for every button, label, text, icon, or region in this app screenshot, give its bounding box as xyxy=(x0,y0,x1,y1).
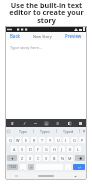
staticText: Y xyxy=(49,138,52,143)
button[interactable]: Q xyxy=(7,137,13,143)
staticText: A xyxy=(13,147,16,152)
staticText: S xyxy=(21,147,24,152)
button[interactable]: Hide keyboard xyxy=(5,172,28,180)
button[interactable]: Y xyxy=(47,137,53,143)
button[interactable]: Align xyxy=(65,119,73,127)
staticText: Types xyxy=(40,129,50,134)
button[interactable]: List xyxy=(53,119,61,127)
staticText: Type xyxy=(19,129,27,134)
button[interactable]: W xyxy=(15,137,21,143)
button[interactable]: R xyxy=(31,137,37,143)
button[interactable]: ?123 xyxy=(7,164,18,170)
staticText: T xyxy=(41,138,44,143)
button[interactable]: Typed xyxy=(57,127,79,135)
button[interactable]: A xyxy=(11,146,17,152)
button[interactable]: Backspace xyxy=(75,155,85,161)
button[interactable]: Italic xyxy=(20,119,28,127)
button[interactable]: O xyxy=(71,137,77,143)
button[interactable]: Bold xyxy=(8,119,16,127)
staticText: R xyxy=(33,138,36,143)
button[interactable]: Type xyxy=(12,127,33,135)
button[interactable]: G xyxy=(43,146,49,152)
button[interactable]: Enter xyxy=(73,164,85,170)
staticText: G xyxy=(45,147,48,152)
staticText: D xyxy=(29,147,32,152)
button[interactable]: Home xyxy=(28,172,64,180)
button[interactable]: X xyxy=(27,155,33,161)
button[interactable]: Types xyxy=(34,127,56,135)
button[interactable]: Preview xyxy=(64,33,83,39)
staticText: N xyxy=(61,156,64,161)
staticText: Type story here... xyxy=(10,45,43,50)
staticText: M xyxy=(68,156,72,161)
staticText: O xyxy=(73,138,76,143)
button[interactable]: Line xyxy=(31,119,39,127)
button[interactable]: More xyxy=(76,119,84,127)
button[interactable]: Back xyxy=(9,33,21,39)
staticText: Preview xyxy=(65,33,82,39)
button[interactable]: P xyxy=(79,137,85,143)
button[interactable]: Emoji xyxy=(5,127,12,135)
button[interactable]: E xyxy=(23,137,29,143)
staticText: Typed xyxy=(63,129,74,134)
staticText: C xyxy=(37,156,40,161)
staticText: , xyxy=(22,165,24,170)
button[interactable]: M xyxy=(67,155,73,161)
staticText: K xyxy=(69,147,72,152)
staticText: New Story xyxy=(33,34,52,39)
button[interactable]: Shift xyxy=(7,155,17,161)
button[interactable]: S xyxy=(19,146,25,152)
button[interactable]: K xyxy=(67,146,73,152)
button[interactable]: Voice input xyxy=(80,127,87,135)
button[interactable]: Menu xyxy=(64,172,87,180)
button[interactable]: . xyxy=(65,164,71,170)
button[interactable]: , xyxy=(20,164,26,170)
staticText: I xyxy=(65,138,67,143)
staticText: F xyxy=(37,147,39,152)
button[interactable]: Type story here... xyxy=(5,40,87,119)
staticText: Q xyxy=(9,138,12,143)
staticText: Z xyxy=(21,156,24,161)
staticText: V xyxy=(45,156,48,161)
button[interactable]: D xyxy=(27,146,33,152)
staticText: X xyxy=(29,156,32,161)
button[interactable]: Emoji xyxy=(28,164,34,170)
staticText: Back xyxy=(10,33,20,39)
button[interactable]: Z xyxy=(19,155,25,161)
staticText: . xyxy=(67,165,69,170)
button[interactable]: L xyxy=(75,146,81,152)
staticText: W xyxy=(16,138,20,143)
staticText: E xyxy=(25,138,28,143)
button[interactable]: V xyxy=(43,155,49,161)
button[interactable]: H xyxy=(51,146,57,152)
button[interactable]: Image xyxy=(42,119,50,127)
staticText: U xyxy=(57,138,60,143)
staticText: ?123 xyxy=(9,165,16,169)
button[interactable]: F xyxy=(35,146,41,152)
staticText: P xyxy=(81,138,84,143)
staticText: L xyxy=(77,147,79,152)
button[interactable]: N xyxy=(59,155,65,161)
button[interactable]: T xyxy=(39,137,45,143)
button[interactable]: B xyxy=(51,155,57,161)
staticText: Use the built-in text editor to create y… xyxy=(9,0,84,26)
button[interactable]: U xyxy=(55,137,61,143)
button[interactable]: C xyxy=(35,155,41,161)
staticText: B xyxy=(53,156,56,161)
button[interactable]: I xyxy=(63,137,69,143)
button[interactable]: J xyxy=(59,146,65,152)
staticText: J xyxy=(61,147,63,152)
staticText: H xyxy=(53,147,56,152)
